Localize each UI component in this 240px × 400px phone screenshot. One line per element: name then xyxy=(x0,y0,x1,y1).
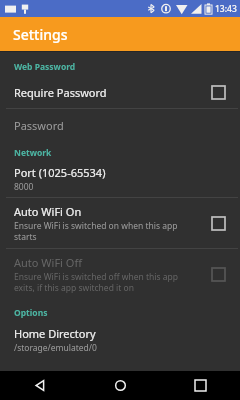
staticText: Auto WiFi On xyxy=(14,204,82,219)
staticText: Ensure WiFi is switched on when this app… xyxy=(14,220,198,242)
button[interactable]: Auto WiFi On xyxy=(208,213,228,233)
staticText: Network xyxy=(14,147,52,159)
staticText: Options xyxy=(14,307,48,319)
staticText: /storage/emulated/0 xyxy=(14,342,97,354)
button[interactable]: Recent apps xyxy=(160,371,240,400)
button[interactable]: Require Password xyxy=(208,82,228,102)
button[interactable]: Back xyxy=(0,371,80,400)
staticText: Password xyxy=(14,118,64,133)
staticText: Home Directory xyxy=(14,326,96,341)
button[interactable]: Auto WiFi Off xyxy=(0,249,240,299)
button[interactable]: Password xyxy=(0,109,240,142)
staticText: Web Password xyxy=(14,61,76,73)
button[interactable]: Require Password xyxy=(0,76,240,108)
staticText: Ensure WiFi is switched off when this ap… xyxy=(14,271,198,293)
button[interactable]: Port (1025-65534) xyxy=(0,161,240,197)
button[interactable]: Home xyxy=(80,371,160,400)
button[interactable]: Auto WiFi On xyxy=(0,198,240,248)
staticText: Require Password xyxy=(14,85,107,100)
staticText: 8000 xyxy=(14,181,34,193)
staticText: Settings xyxy=(13,25,68,44)
button[interactable]: Home Directory xyxy=(0,322,240,358)
staticText: Auto WiFi Off xyxy=(14,255,82,270)
staticText: Port (1025-65534) xyxy=(14,165,106,180)
button[interactable]: Auto WiFi Off xyxy=(208,264,228,284)
staticText: 13:43 xyxy=(215,3,237,15)
